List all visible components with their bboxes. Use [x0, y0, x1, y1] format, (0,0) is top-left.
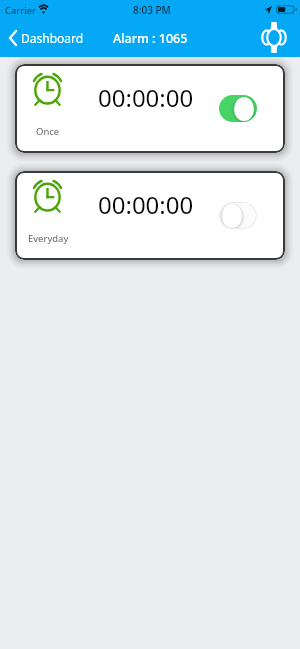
- button[interactable]: Everyday: [15, 171, 285, 260]
- button[interactable]: Dashboard: [0, 24, 94, 52]
- staticText: Alarm : 1065: [113, 30, 188, 47]
- staticText: 00:00:00: [98, 81, 194, 114]
- staticText: 00:00:00: [98, 188, 194, 221]
- staticText: Dashboard: [21, 30, 84, 46]
- staticText: 8:03 PM: [133, 3, 171, 17]
- staticText: Carrier: [5, 4, 36, 17]
- staticText: Everyday: [28, 232, 69, 245]
- button[interactable]: Once: [15, 64, 285, 153]
- button[interactable]: Watch: [257, 20, 291, 54]
- button[interactable]: Alarm enabled: [219, 95, 257, 122]
- staticText: Once: [36, 125, 60, 138]
- button[interactable]: Alarm disabled: [219, 202, 257, 229]
